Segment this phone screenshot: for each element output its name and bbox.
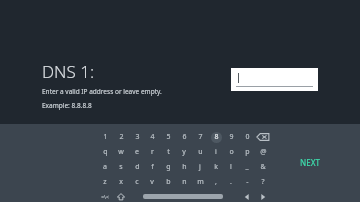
staticText: Example: 8.8.8.8 (42, 101, 92, 110)
button[interactable]: b (161, 176, 175, 188)
button[interactable]: s (114, 161, 128, 173)
staticText: o (229, 147, 234, 157)
button[interactable]: , (209, 176, 223, 188)
staticText: n (182, 177, 187, 187)
button[interactable]: ? (256, 176, 270, 188)
button[interactable]: & (256, 161, 270, 173)
staticText: =\< (101, 194, 109, 201)
button[interactable]: @ (256, 146, 270, 158)
button[interactable]: 7 (193, 131, 207, 143)
button[interactable]: y (177, 146, 191, 158)
button[interactable]: 0 (240, 131, 254, 143)
button[interactable]: o (224, 146, 238, 158)
button[interactable]: _ (240, 161, 254, 173)
button[interactable]: z (98, 176, 112, 188)
staticText: . (230, 177, 232, 187)
staticText: g (166, 162, 171, 172)
staticText: 4 (150, 132, 155, 142)
button[interactable]: d (130, 161, 144, 173)
button[interactable]: q (98, 146, 112, 158)
staticText: DNS 1: (42, 60, 95, 83)
button[interactable]: . (224, 176, 238, 188)
staticText: 0 (245, 132, 250, 142)
staticText: & (260, 162, 266, 172)
staticText: k (214, 162, 218, 172)
button[interactable]: n (177, 176, 191, 188)
staticText: x (119, 177, 123, 187)
staticText: _ (245, 162, 249, 172)
button[interactable]: a (98, 161, 112, 173)
button[interactable]: r (145, 146, 159, 158)
staticText: p (245, 147, 250, 157)
staticText: r (151, 147, 154, 157)
staticText: w (118, 147, 124, 157)
button[interactable]: i (209, 146, 223, 158)
staticText: 1 (103, 132, 108, 142)
staticText: m (197, 177, 204, 187)
button[interactable]: l (224, 161, 238, 173)
button[interactable]: m (193, 176, 207, 188)
staticText: s (119, 162, 123, 172)
staticText: a (103, 162, 107, 172)
button[interactable]: 3 (130, 131, 144, 143)
staticText: e (135, 147, 139, 157)
staticText: j (199, 162, 201, 172)
button[interactable]: 1 (98, 131, 112, 143)
staticText: NEXT (300, 157, 321, 168)
button[interactable]: Shift (114, 191, 128, 202)
staticText: h (182, 162, 187, 172)
staticText: 6 (182, 132, 187, 142)
staticText: , (215, 177, 217, 187)
button[interactable]: 9 (224, 131, 238, 143)
staticText: 9 (229, 132, 234, 142)
staticText: i (215, 147, 217, 157)
button[interactable]: u (193, 146, 207, 158)
staticText: u (198, 147, 203, 157)
staticText: 8 (214, 132, 219, 142)
button[interactable]: w (114, 146, 128, 158)
button[interactable]: t (161, 146, 175, 158)
button[interactable]: Backspace (256, 131, 270, 143)
staticText: 3 (135, 132, 140, 142)
button[interactable]: x (114, 176, 128, 188)
staticText: y (182, 147, 186, 157)
button[interactable]: 5 (161, 131, 175, 143)
staticText: d (135, 162, 140, 172)
button[interactable]: 2 (114, 131, 128, 143)
button[interactable]: Move cursor left (240, 191, 254, 202)
button[interactable]: Move cursor right (256, 191, 270, 202)
button[interactable]: j (193, 161, 207, 173)
staticText: f (151, 162, 154, 172)
staticText: 7 (198, 132, 203, 142)
button[interactable]: 4 (145, 131, 159, 143)
staticText: b (166, 177, 171, 187)
button[interactable]: NEXT (296, 154, 325, 171)
staticText: 2 (119, 132, 124, 142)
staticText: - (246, 177, 249, 187)
button[interactable]: Space (143, 194, 223, 199)
button[interactable]: f (145, 161, 159, 173)
button[interactable]: k (209, 161, 223, 173)
button[interactable]: g (161, 161, 175, 173)
staticText: ? (261, 177, 265, 187)
button[interactable]: p (240, 146, 254, 158)
staticText: c (135, 177, 139, 187)
staticText: 5 (166, 132, 171, 142)
staticText: q (103, 147, 108, 157)
button[interactable]: 8 (209, 131, 223, 143)
staticText: l (230, 162, 232, 172)
staticText: v (150, 177, 154, 187)
button[interactable]: - (240, 176, 254, 188)
button[interactable]: v (145, 176, 159, 188)
staticText: @ (260, 147, 267, 157)
button[interactable] (231, 68, 318, 91)
button[interactable]: h (177, 161, 191, 173)
staticText: Enter a valid IP address or leave empty. (42, 87, 162, 96)
staticText: t (167, 147, 170, 157)
staticText: z (103, 177, 107, 187)
button[interactable]: c (130, 176, 144, 188)
button[interactable]: 6 (177, 131, 191, 143)
button[interactable]: Symbols (98, 191, 112, 202)
button[interactable]: e (130, 146, 144, 158)
